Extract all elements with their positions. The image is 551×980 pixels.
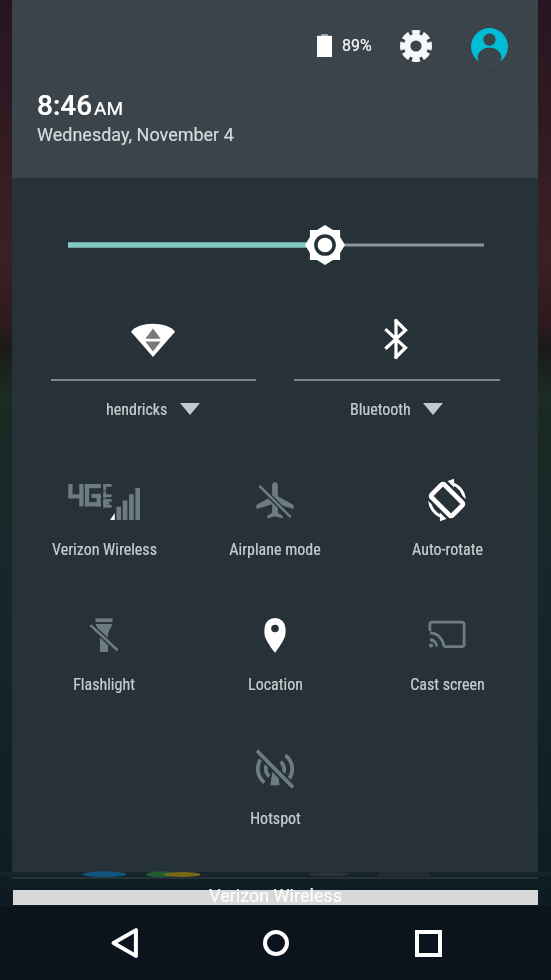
staticText: Airplane mode (229, 540, 321, 559)
button[interactable]: Cast screen (362, 600, 532, 710)
staticText: Verizon Wireless (209, 885, 342, 906)
staticText: Flashlight (73, 675, 135, 694)
staticText: Hotspot (250, 809, 301, 828)
button[interactable]: Verizon Wireless (19, 465, 189, 575)
button[interactable]: Auto-rotate (362, 465, 532, 575)
staticText: Cast screen (410, 675, 485, 694)
button[interactable]: Collapse quick settings (13, 890, 538, 905)
button[interactable]: Wednesday, November 4 (37, 124, 234, 145)
button[interactable]: Brightness (304, 224, 346, 266)
button[interactable]: Recent apps (397, 906, 459, 980)
button[interactable]: hendricks (68, 304, 238, 426)
button[interactable]: Hotspot (190, 734, 360, 844)
button[interactable]: Settings (392, 22, 440, 70)
button[interactable]: Back (94, 906, 156, 980)
staticText: Location (248, 675, 303, 694)
staticText: Bluetooth (350, 400, 411, 419)
button[interactable]: Switch user (465, 22, 513, 70)
staticText: Auto-rotate (412, 540, 483, 559)
button[interactable]: 8:46 (37, 89, 123, 122)
button[interactable]: Home (245, 906, 307, 980)
button[interactable]: Bluetooth (311, 304, 481, 426)
button[interactable]: Flashlight (19, 600, 189, 710)
button[interactable]: Location (190, 600, 360, 710)
staticText: 8:46 (37, 89, 93, 122)
button[interactable]: Airplane mode (190, 465, 360, 575)
staticText: hendricks (106, 400, 168, 419)
staticText: Verizon Wireless (52, 540, 157, 559)
staticText: 89% (342, 36, 372, 55)
staticText: AM (94, 97, 123, 119)
